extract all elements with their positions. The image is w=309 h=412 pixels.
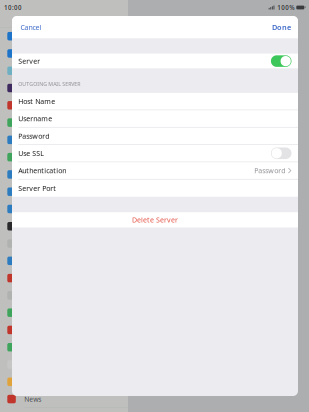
button[interactable]: Server (12, 54, 298, 69)
staticText: 10:00 (4, 3, 22, 12)
staticText: Books (24, 49, 43, 58)
staticText: Password (18, 131, 49, 141)
button[interactable]: Messages (0, 339, 128, 356)
button[interactable]: Books (0, 45, 128, 62)
button[interactable]: Username (12, 110, 298, 127)
staticText: Files (24, 170, 38, 179)
staticText: App Store (24, 32, 55, 41)
staticText: Host Name (18, 96, 55, 106)
button[interactable]: Calculator (0, 62, 128, 80)
button[interactable]: Password (12, 128, 298, 144)
button[interactable]: FaceTime (0, 149, 128, 166)
staticText: Contacts (24, 135, 50, 144)
staticText: Calculator (24, 66, 56, 75)
staticText: Use SSL (18, 148, 44, 158)
button[interactable]: Freeform (0, 218, 128, 235)
button[interactable]: Authentication (12, 162, 298, 179)
button[interactable]: Find My (0, 183, 128, 201)
button[interactable]: Compass (0, 114, 128, 131)
staticText: 100% (277, 3, 294, 12)
button[interactable]: Measure (0, 322, 128, 339)
button[interactable]: Files (0, 166, 128, 183)
staticText: Camera (24, 83, 49, 93)
button[interactable]: Fitness (0, 201, 128, 218)
staticText: Password (254, 166, 285, 175)
staticText: Freeform (24, 222, 53, 231)
button[interactable]: Home (0, 252, 128, 270)
staticText: Fitness (24, 204, 45, 213)
button[interactable]: Clock (0, 97, 128, 114)
button[interactable]: Contacts (0, 131, 128, 149)
button[interactable]: Use SSL (12, 145, 298, 162)
staticText: OUTGOING MAIL SERVER (18, 80, 80, 87)
button[interactable]: Done (264, 16, 298, 38)
staticText: Username (18, 114, 52, 123)
staticText: Find My (24, 187, 48, 196)
staticText: Authentication (18, 166, 66, 175)
staticText: FaceTime (24, 153, 54, 162)
button[interactable]: Music (0, 356, 128, 373)
button[interactable]: Cancel (12, 16, 49, 38)
button[interactable]: News (0, 391, 128, 408)
button[interactable]: Maps (0, 304, 128, 322)
button[interactable]: iTunes Store (0, 270, 128, 287)
button[interactable]: Delete Server (12, 212, 298, 227)
staticText: Compass (24, 118, 52, 127)
staticText: Clock (24, 101, 41, 110)
staticText: Done (272, 22, 291, 32)
staticText: Server (18, 56, 40, 66)
button[interactable]: Notes (0, 373, 128, 391)
button[interactable]: Health (0, 235, 128, 252)
button[interactable]: App Store (0, 28, 128, 45)
button[interactable]: Server Port (12, 180, 298, 197)
staticText: Cancel (20, 22, 41, 32)
button[interactable]: Camera (0, 80, 128, 97)
staticText: Delete Server (132, 215, 178, 225)
button[interactable]: Magnifier (0, 287, 128, 304)
button[interactable]: Host Name (12, 93, 298, 110)
staticText: Server Port (18, 183, 56, 193)
staticText: News (24, 394, 41, 404)
